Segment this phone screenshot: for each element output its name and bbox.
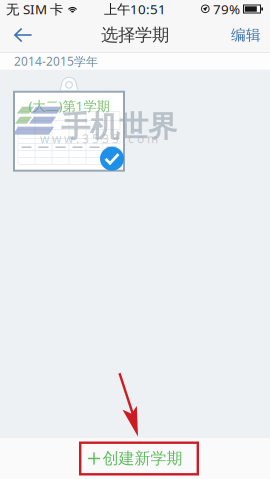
staticText: 编辑 [231, 26, 261, 44]
staticText: 上午10:51 [104, 0, 166, 18]
staticText: 创建新学期 [102, 449, 182, 468]
staticText: 选择学期 [101, 24, 169, 46]
button[interactable]: 创建新学期 [0, 438, 270, 479]
staticText: w w w . 3 5 3 3 . c o m [40, 131, 158, 147]
button[interactable]: 编辑 [215, 18, 270, 52]
button[interactable]: (大二)第1学期 [13, 77, 125, 172]
staticText: (大二)第1学期 [28, 97, 109, 114]
button[interactable]: 返回 [0, 18, 48, 52]
staticText: 无 SIM 卡 [6, 0, 63, 18]
staticText: 手机世界 [61, 109, 177, 145]
staticText: 79% [213, 0, 240, 18]
staticText: 2014-2015学年 [14, 53, 98, 69]
